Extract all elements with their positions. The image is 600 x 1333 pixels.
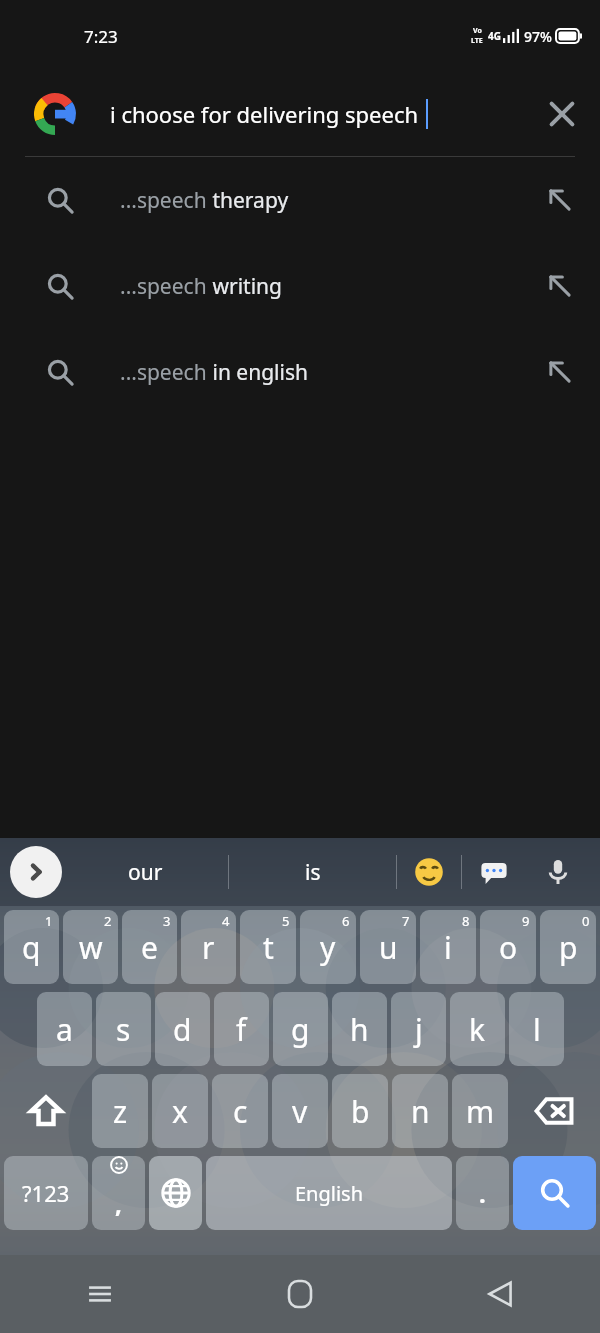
button[interactable]: Clear search xyxy=(524,72,600,156)
button[interactable]: k xyxy=(450,992,505,1066)
button[interactable]: g xyxy=(273,992,328,1066)
staticText: s xyxy=(116,1009,131,1050)
staticText: 97% xyxy=(524,27,552,46)
button[interactable]: Search xyxy=(513,1156,596,1230)
button[interactable]: u xyxy=(360,910,416,984)
button[interactable]: Comma and emoji xyxy=(92,1156,145,1230)
staticText: h xyxy=(350,1009,369,1050)
button[interactable]: Emoji xyxy=(397,838,461,906)
button[interactable]: a xyxy=(37,992,92,1066)
staticText: ...speech xyxy=(120,272,207,301)
button[interactable]: o xyxy=(480,910,536,984)
button[interactable]: Google xyxy=(0,72,110,156)
staticText: 4G xyxy=(488,29,501,43)
staticText: g xyxy=(291,1009,310,1050)
button[interactable]: c xyxy=(212,1074,268,1148)
staticText: 6 xyxy=(342,912,350,930)
staticText: k xyxy=(469,1009,486,1050)
button[interactable]: h xyxy=(332,992,387,1066)
button[interactable]: w xyxy=(63,910,118,984)
staticText: n xyxy=(411,1091,430,1132)
staticText: ...speech xyxy=(120,186,207,215)
button[interactable]: ...speech xyxy=(0,329,600,415)
button[interactable]: i choose for delivering speech xyxy=(110,72,524,156)
button[interactable]: y xyxy=(300,910,356,984)
staticText: p xyxy=(559,927,578,968)
button[interactable]: is xyxy=(229,838,396,906)
staticText: writing xyxy=(207,272,282,301)
staticText: w xyxy=(79,927,103,968)
staticText: d xyxy=(173,1009,192,1050)
button[interactable]: . xyxy=(456,1156,509,1230)
button[interactable]: Recent apps xyxy=(0,1255,200,1333)
button[interactable]: e xyxy=(122,910,177,984)
button[interactable]: j xyxy=(391,992,446,1066)
staticText: 7 xyxy=(402,912,410,930)
button[interactable]: Stickers xyxy=(462,838,526,906)
staticText: , xyxy=(115,1187,122,1220)
button[interactable]: ...speech xyxy=(0,157,600,243)
staticText: z xyxy=(113,1091,128,1132)
staticText: ?123 xyxy=(22,1178,70,1208)
button[interactable]: d xyxy=(155,992,210,1066)
button[interactable]: our xyxy=(62,838,228,906)
staticText: 8 xyxy=(462,912,470,930)
staticText: our xyxy=(128,858,163,887)
staticText: therapy xyxy=(207,186,289,215)
staticText: 0 xyxy=(582,912,590,930)
button[interactable]: z xyxy=(92,1074,148,1148)
staticText: 7:23 xyxy=(84,25,118,48)
button[interactable]: l xyxy=(509,992,564,1066)
button[interactable]: i xyxy=(420,910,476,984)
button[interactable]: m xyxy=(452,1074,508,1148)
staticText: ...speech xyxy=(120,358,207,387)
button[interactable]: Insert suggestion xyxy=(520,157,600,243)
button[interactable]: v xyxy=(272,1074,328,1148)
staticText: in english xyxy=(207,358,308,387)
button[interactable]: n xyxy=(392,1074,448,1148)
staticText: o xyxy=(499,927,518,968)
staticText: . xyxy=(479,1177,486,1210)
button[interactable]: s xyxy=(96,992,151,1066)
button[interactable]: p xyxy=(540,910,596,984)
button[interactable]: Insert suggestion xyxy=(520,329,600,415)
button[interactable]: x xyxy=(152,1074,208,1148)
button[interactable]: Voice input xyxy=(526,838,590,906)
staticText: x xyxy=(172,1091,188,1132)
staticText: v xyxy=(292,1091,308,1132)
button[interactable]: Expand toolbar xyxy=(10,846,62,898)
button[interactable]: ?123 xyxy=(4,1156,88,1230)
staticText: 2 xyxy=(104,912,112,930)
staticText: a xyxy=(56,1009,73,1050)
staticText: b xyxy=(351,1091,370,1132)
staticText: j xyxy=(415,1009,423,1050)
staticText: LTE xyxy=(471,36,483,46)
staticText: 9 xyxy=(522,912,530,930)
staticText: y xyxy=(320,927,336,968)
button[interactable]: English xyxy=(206,1156,452,1230)
button[interactable]: Back xyxy=(400,1255,600,1333)
staticText: 3 xyxy=(163,912,171,930)
staticText: t xyxy=(263,927,274,968)
staticText: 5 xyxy=(282,912,290,930)
button[interactable]: r xyxy=(181,910,236,984)
button[interactable]: Shift xyxy=(4,1074,88,1148)
button[interactable]: q xyxy=(4,910,59,984)
staticText: u xyxy=(379,927,398,968)
staticText: is xyxy=(305,858,321,887)
staticText: 1 xyxy=(45,912,53,930)
button[interactable]: f xyxy=(214,992,269,1066)
staticText: Vo xyxy=(473,26,482,36)
button[interactable]: Home xyxy=(200,1255,400,1333)
button[interactable]: b xyxy=(332,1074,388,1148)
button[interactable]: Insert suggestion xyxy=(520,243,600,329)
button[interactable]: t xyxy=(240,910,296,984)
button[interactable]: ...speech xyxy=(0,243,600,329)
button[interactable]: Change language xyxy=(149,1156,202,1230)
staticText: English xyxy=(295,1180,364,1207)
button[interactable]: Backspace xyxy=(512,1074,596,1148)
staticText: 4 xyxy=(222,912,230,930)
staticText: q xyxy=(22,927,41,968)
staticText: m xyxy=(466,1091,495,1132)
staticText: l xyxy=(533,1009,541,1050)
